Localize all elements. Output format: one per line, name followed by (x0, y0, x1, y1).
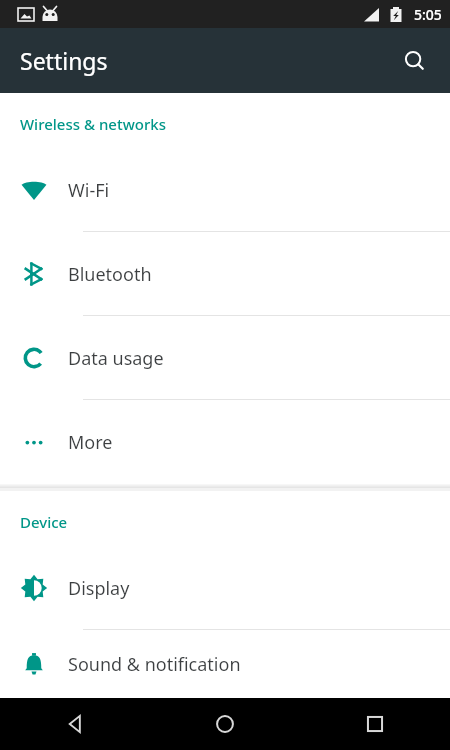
staticText: Settings (20, 45, 108, 76)
staticText: Bluetooth (68, 262, 152, 287)
button[interactable]: Display (0, 546, 450, 630)
staticText: Data usage (68, 346, 164, 371)
button[interactable]: Bluetooth (0, 232, 450, 316)
staticText: Wireless & networks (20, 114, 166, 134)
staticText: Sound & notification (68, 652, 241, 677)
button[interactable]: Sound & notification (0, 630, 450, 698)
staticText: Wi-Fi (68, 178, 110, 203)
staticText: More (68, 430, 113, 455)
staticText: Display (68, 576, 130, 601)
button[interactable]: Back (0, 698, 150, 750)
staticText: 5:05 (414, 5, 442, 24)
button[interactable]: Recent apps (300, 698, 450, 750)
button[interactable]: More (0, 400, 450, 484)
staticText: Device (20, 512, 68, 532)
button[interactable]: Search (393, 39, 437, 83)
button[interactable]: Data usage (0, 316, 450, 400)
button[interactable]: Wi-Fi (0, 148, 450, 232)
button[interactable]: Home (150, 698, 300, 750)
